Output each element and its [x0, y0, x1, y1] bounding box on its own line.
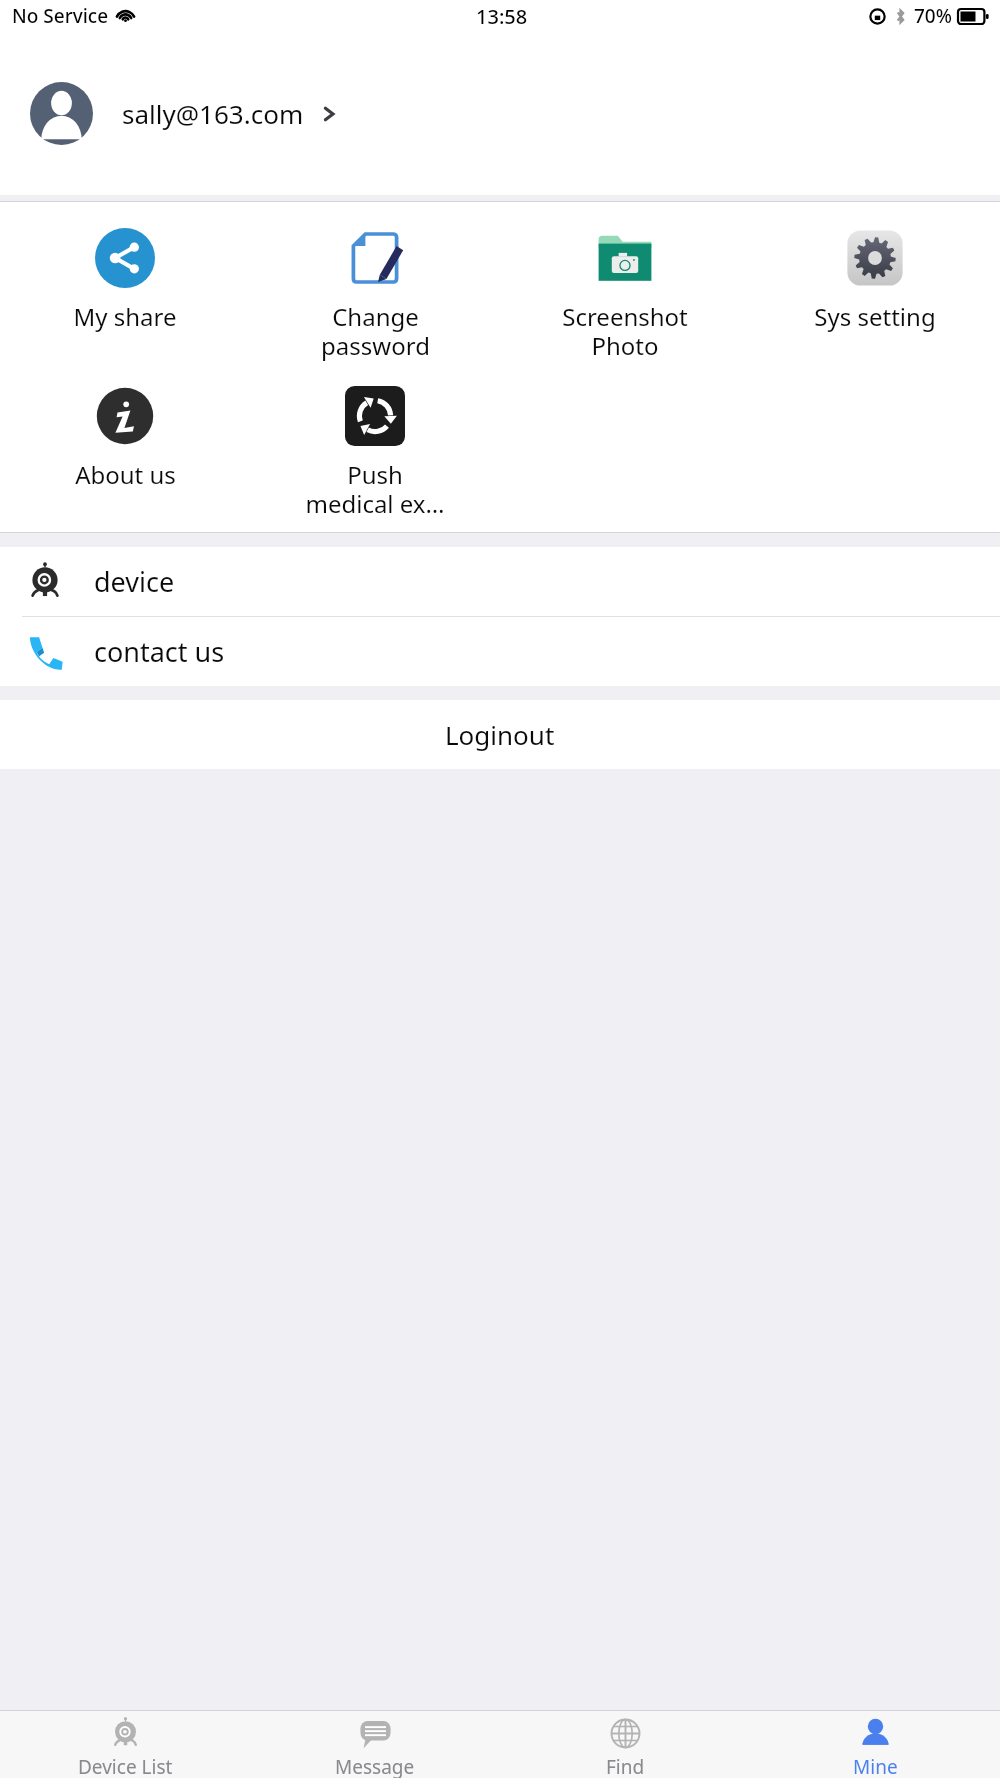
button[interactable]: Device List [0, 1711, 250, 1778]
staticText: Sys setting [814, 300, 936, 333]
button[interactable]: Loginout [0, 700, 1000, 769]
staticText: Loginout [445, 717, 555, 752]
staticText: 13:58 [476, 3, 528, 30]
button[interactable]: Change password [250, 224, 500, 366]
staticText: Device List [78, 1754, 173, 1778]
staticText: Find [606, 1754, 645, 1778]
staticText: Mine [853, 1754, 898, 1778]
button[interactable]: Mine [750, 1711, 1000, 1778]
button[interactable]: sally@163.com [0, 32, 1000, 195]
staticText: 70% [914, 3, 952, 29]
staticText: sally@163.com [122, 96, 304, 131]
button[interactable]: Find [500, 1711, 750, 1778]
staticText: Screenshot Photo [562, 300, 688, 362]
staticText: No Service [12, 3, 109, 29]
staticText: About us [75, 458, 176, 491]
staticText: contact us [94, 633, 225, 670]
button[interactable]: Push medical ex… [250, 382, 500, 524]
staticText: Push medical ex… [305, 458, 445, 520]
button[interactable]: contact us [0, 617, 1000, 686]
staticText: device [94, 563, 175, 600]
button[interactable]: About us [0, 382, 250, 495]
button[interactable]: Screenshot Photo [500, 224, 750, 366]
button[interactable]: Message [250, 1711, 500, 1778]
staticText: Message [335, 1754, 415, 1778]
staticText: Change password [321, 300, 430, 362]
button[interactable]: device [0, 547, 1000, 616]
button[interactable]: My share [0, 224, 250, 337]
button[interactable]: Sys setting [750, 224, 1000, 337]
staticText: My share [73, 300, 177, 333]
